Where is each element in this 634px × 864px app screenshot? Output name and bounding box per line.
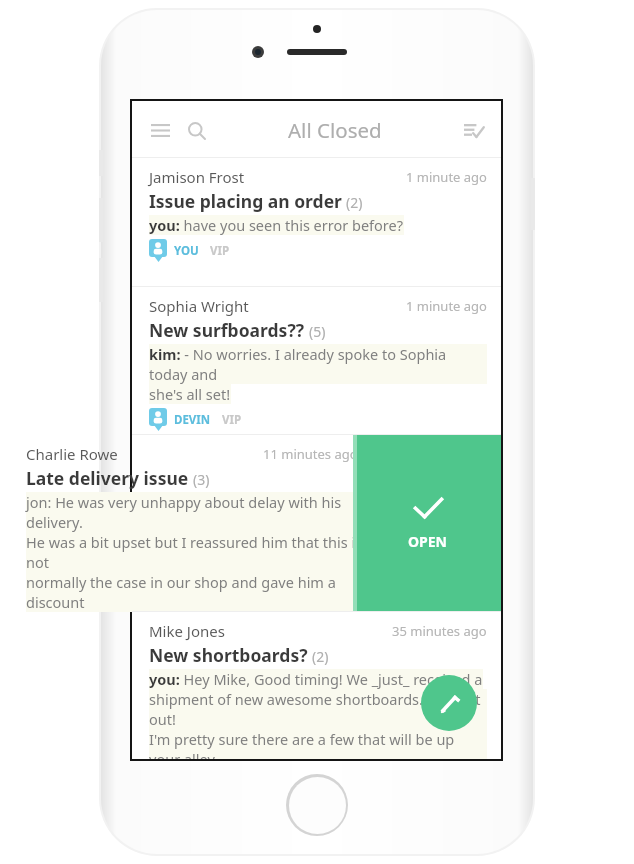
staticText: (3)	[193, 470, 210, 489]
staticText: Sophia Wright	[149, 296, 249, 316]
staticText: Late delivery issue	[26, 466, 189, 490]
staticText: 1 minute ago	[406, 168, 487, 186]
staticText: (5)	[309, 322, 326, 341]
staticText: Mike Jones	[149, 621, 225, 641]
staticText: (2)	[346, 193, 363, 212]
staticText: VIP	[222, 412, 242, 428]
staticText: shipment of new awesome shortboards. Che…	[149, 689, 487, 729]
staticText: 35 minutes ago	[392, 622, 487, 640]
button[interactable]: Filter list	[458, 114, 490, 146]
staticText: 11 minutes ago	[263, 445, 358, 463]
staticText: jon: He was very unhappy about delay wit…	[26, 492, 378, 532]
staticText: you: Hey Mike, Good timing! We _just_ re…	[149, 669, 483, 689]
staticText: He was a bit upset but I reassured him t…	[26, 532, 378, 572]
staticText: kim: - No worries. I already spoke to So…	[149, 344, 487, 384]
staticText: you: have you seen this error before?	[149, 215, 404, 235]
staticText: 1 minute ago	[406, 297, 487, 315]
staticText: normally the case in our shop and gave h…	[26, 572, 378, 612]
staticText: OPEN	[408, 532, 447, 551]
staticText: (2)	[312, 647, 329, 666]
staticText: she's all set!	[149, 384, 231, 404]
staticText: VIP	[210, 243, 230, 259]
staticText: Charlie Rowe	[26, 444, 118, 464]
button[interactable]: Compose new message	[421, 675, 477, 731]
button[interactable]: Jamison Frost	[132, 158, 501, 287]
staticText: New surfboards??	[149, 318, 305, 342]
staticText: YOU	[174, 243, 199, 259]
button[interactable]: Search	[180, 114, 212, 146]
staticText: New shortboards?	[149, 643, 308, 667]
button[interactable]: Sophia Wright	[132, 287, 501, 435]
button[interactable]: Menu	[145, 115, 175, 145]
staticText: I'm pretty sure there are a few that wil…	[149, 729, 487, 759]
button[interactable]: Mike Jones	[132, 612, 501, 759]
staticText: Issue placing an order	[149, 189, 342, 213]
staticText: Jamison Frost	[149, 167, 245, 187]
button[interactable]: Open conversation	[353, 435, 501, 612]
staticText: All Closed	[288, 116, 382, 144]
staticText: DEVIN	[174, 412, 211, 428]
